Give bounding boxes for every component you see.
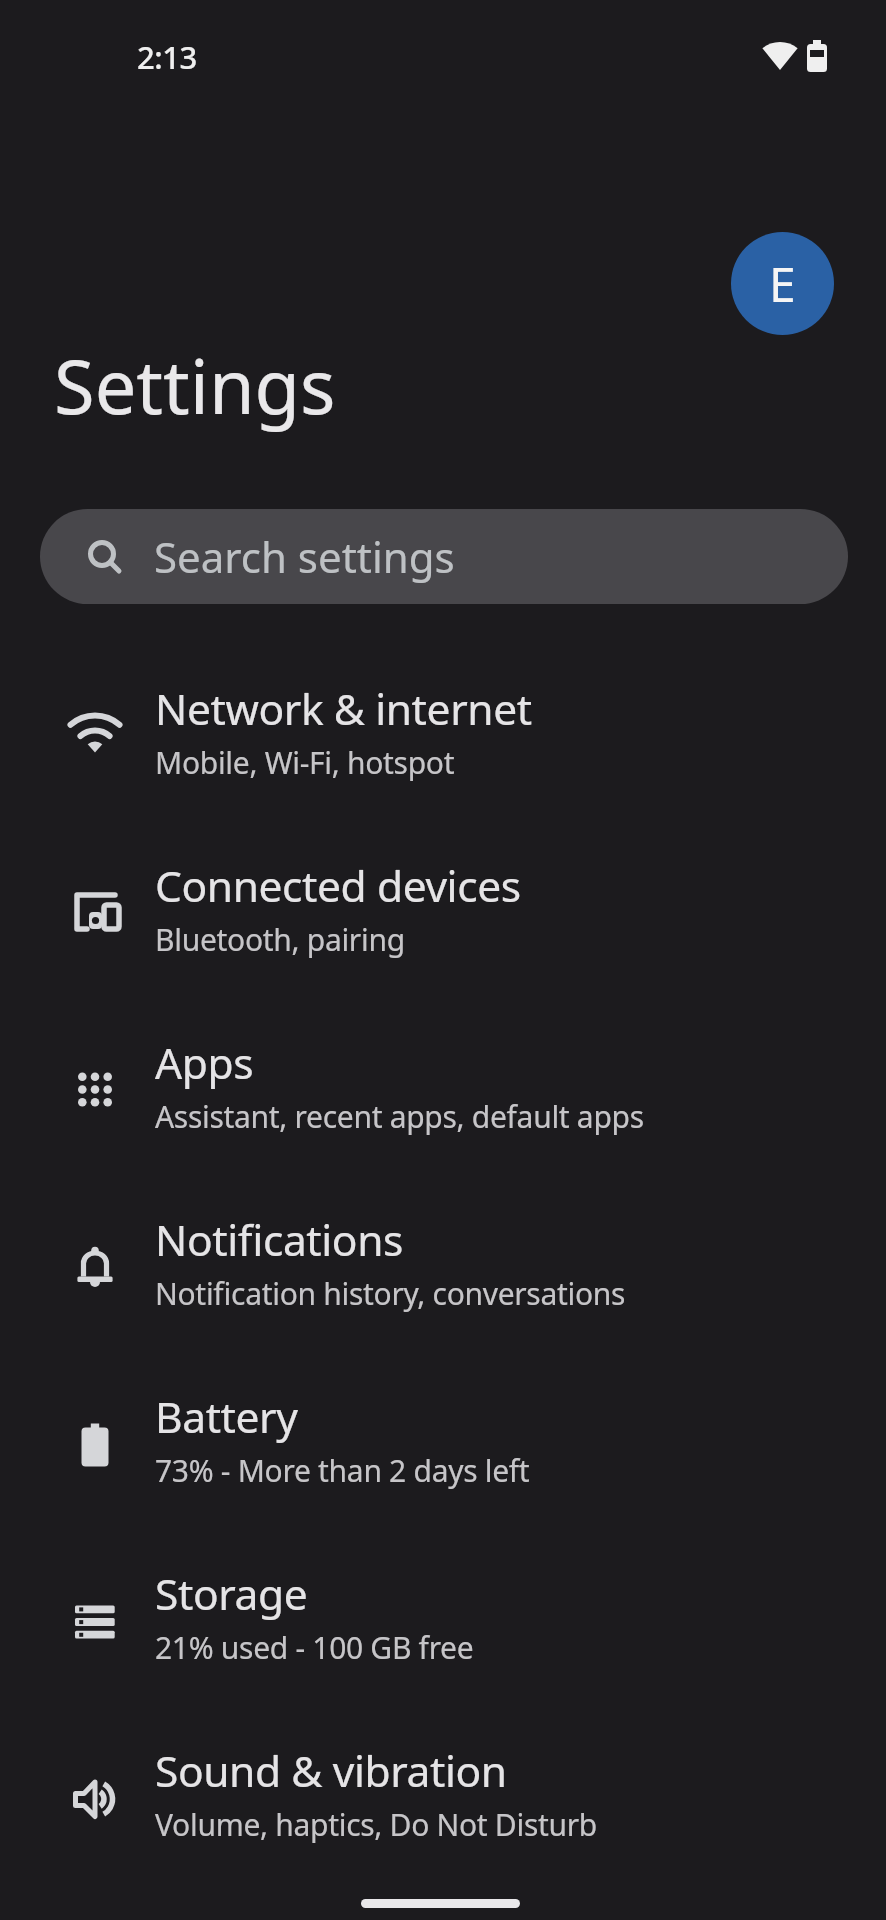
button[interactable]: Battery bbox=[0, 1358, 886, 1535]
button[interactable]: Search settings bbox=[40, 509, 848, 604]
button[interactable]: Apps bbox=[0, 1004, 886, 1181]
button[interactable]: Network & internet bbox=[0, 650, 886, 827]
staticText: 73% - More than 2 days left bbox=[155, 1450, 530, 1491]
staticText: Search settings bbox=[154, 528, 455, 585]
staticText: Network & internet bbox=[155, 680, 532, 738]
button[interactable]: Sound & vibration bbox=[0, 1712, 886, 1889]
staticText: Storage bbox=[155, 1565, 308, 1623]
staticText: Apps bbox=[155, 1034, 254, 1092]
staticText: Battery bbox=[155, 1388, 298, 1446]
button[interactable]: Storage bbox=[0, 1535, 886, 1712]
button[interactable]: Connected devices bbox=[0, 827, 886, 1004]
staticText: 2:13 bbox=[137, 36, 197, 78]
staticText: Settings bbox=[54, 335, 336, 436]
staticText: Bluetooth, pairing bbox=[155, 919, 405, 960]
staticText: Sound & vibration bbox=[155, 1742, 507, 1800]
staticText: Notification history, conversations bbox=[155, 1273, 626, 1314]
staticText: Connected devices bbox=[155, 857, 521, 915]
staticText: E bbox=[769, 251, 796, 316]
staticText: Mobile, Wi-Fi, hotspot bbox=[155, 742, 455, 783]
staticText: Volume, haptics, Do Not Disturb bbox=[155, 1804, 597, 1845]
staticText: Assistant, recent apps, default apps bbox=[155, 1096, 644, 1137]
staticText: Notifications bbox=[155, 1211, 403, 1269]
button[interactable]: Notifications bbox=[0, 1181, 886, 1358]
staticText: 21% used - 100 GB free bbox=[155, 1627, 474, 1668]
button[interactable]: E bbox=[731, 232, 834, 335]
